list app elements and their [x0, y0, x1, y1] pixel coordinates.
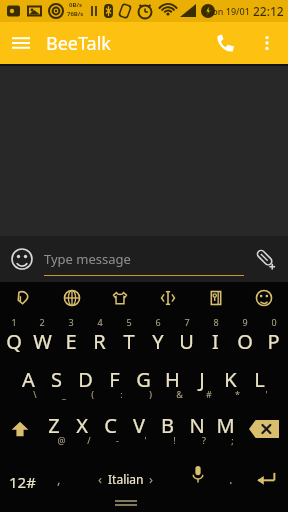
- staticText: Italian: [108, 471, 144, 487]
- staticText: 3: [68, 316, 74, 328]
- staticText: 5: [126, 316, 132, 328]
- button[interactable]: S: [42, 360, 71, 406]
- staticText: ;: [231, 434, 234, 446]
- button[interactable]: C: [96, 406, 124, 452]
- staticText: Type message: [44, 250, 131, 268]
- staticText: I: [212, 328, 219, 355]
- button[interactable]: G: [129, 360, 158, 406]
- staticText: 2: [39, 316, 45, 328]
- staticText: 12#: [9, 472, 36, 492]
- button[interactable]: Cursor: [144, 282, 192, 314]
- staticText: .: [229, 470, 233, 488]
- staticText: X: [76, 412, 88, 439]
- staticText: 22:12: [253, 3, 284, 19]
- staticText: 1: [11, 316, 17, 328]
- staticText: H: [165, 366, 180, 393]
- button[interactable]: Voice input: [178, 452, 218, 512]
- staticText: V: [133, 412, 145, 439]
- staticText: N: [189, 412, 205, 439]
- staticText: Z: [48, 412, 60, 439]
- button[interactable]: Menu: [0, 22, 42, 64]
- staticText: S: [51, 366, 62, 393]
- button[interactable]: 5: [114, 314, 143, 360]
- button[interactable]: F: [100, 360, 129, 406]
- staticText: F: [109, 366, 120, 393]
- staticText: BeeTalk: [46, 31, 111, 56]
- staticText: :: [120, 388, 123, 400]
- staticText: 7: [184, 316, 190, 328]
- button[interactable]: V: [124, 406, 153, 452]
- button[interactable]: 7: [172, 314, 201, 360]
- staticText: ‹: [98, 470, 103, 488]
- button[interactable]: ,: [44, 452, 74, 512]
- button[interactable]: Enter: [244, 452, 288, 512]
- button[interactable]: Backspace: [240, 406, 288, 452]
- staticText: M: [216, 412, 235, 439]
- staticText: (: [91, 388, 94, 400]
- staticText: !: [173, 434, 176, 446]
- staticText: U: [179, 328, 194, 355]
- staticText: 6: [155, 316, 161, 328]
- staticText: T: [123, 328, 135, 355]
- staticText: Q: [6, 328, 22, 355]
- button[interactable]: D: [71, 360, 100, 406]
- staticText: #: [206, 388, 212, 400]
- button[interactable]: K: [216, 360, 245, 406]
- button[interactable]: Space: [74, 452, 178, 512]
- staticText: K: [224, 366, 237, 393]
- button[interactable]: 8: [201, 314, 230, 360]
- button[interactable]: A: [14, 360, 42, 406]
- staticText: ': [144, 434, 147, 446]
- staticText: ): [149, 388, 152, 400]
- button[interactable]: 9: [230, 314, 259, 360]
- button[interactable]: Theme: [96, 282, 144, 314]
- staticText: 4: [97, 316, 103, 328]
- button[interactable]: B: [153, 406, 182, 452]
- button[interactable]: .: [218, 452, 244, 512]
- button[interactable]: Handwriting: [0, 282, 48, 314]
- button[interactable]: L: [245, 360, 274, 406]
- button[interactable]: Emoji: [240, 282, 288, 314]
- button[interactable]: Type message: [44, 236, 244, 282]
- staticText: 0: [271, 316, 277, 328]
- staticText: A: [22, 366, 35, 393]
- staticText: O: [237, 328, 253, 355]
- staticText: P: [267, 328, 280, 355]
- button[interactable]: Call: [204, 22, 246, 64]
- button[interactable]: 1: [0, 314, 28, 360]
- button[interactable]: Clipboard: [192, 282, 240, 314]
- staticText: *: [235, 388, 240, 400]
- staticText: G: [136, 366, 151, 393]
- button[interactable]: J: [187, 360, 216, 406]
- staticText: 9: [242, 316, 248, 328]
- button[interactable]: Language: [48, 282, 96, 314]
- button[interactable]: Emoji: [0, 237, 44, 281]
- staticText: B: [161, 412, 174, 439]
- button[interactable]: Z: [40, 406, 68, 452]
- button[interactable]: 4: [85, 314, 114, 360]
- button[interactable]: Attach: [244, 237, 288, 281]
- button[interactable]: M: [211, 406, 240, 452]
- button[interactable]: 3: [56, 314, 85, 360]
- staticText: L: [254, 366, 265, 393]
- button[interactable]: 2: [28, 314, 56, 360]
- button[interactable]: X: [68, 406, 96, 452]
- button[interactable]: 12#: [0, 452, 44, 512]
- staticText: ?: [202, 434, 206, 446]
- staticText: &: [176, 388, 183, 400]
- staticText: /: [87, 434, 91, 446]
- staticText: C: [104, 412, 117, 439]
- staticText: -: [116, 434, 119, 446]
- staticText: 8: [213, 316, 219, 328]
- button[interactable]: 6: [143, 314, 172, 360]
- staticText: ,: [57, 470, 61, 488]
- button[interactable]: 0: [259, 314, 288, 360]
- button[interactable]: More options: [246, 22, 288, 64]
- button[interactable]: Shift: [0, 406, 40, 452]
- staticText: E: [65, 328, 77, 355]
- staticText: J: [199, 366, 205, 393]
- staticText: \: [33, 388, 37, 400]
- button[interactable]: N: [182, 406, 211, 452]
- button[interactable]: H: [158, 360, 187, 406]
- staticText: Mon 19/01: [204, 5, 250, 17]
